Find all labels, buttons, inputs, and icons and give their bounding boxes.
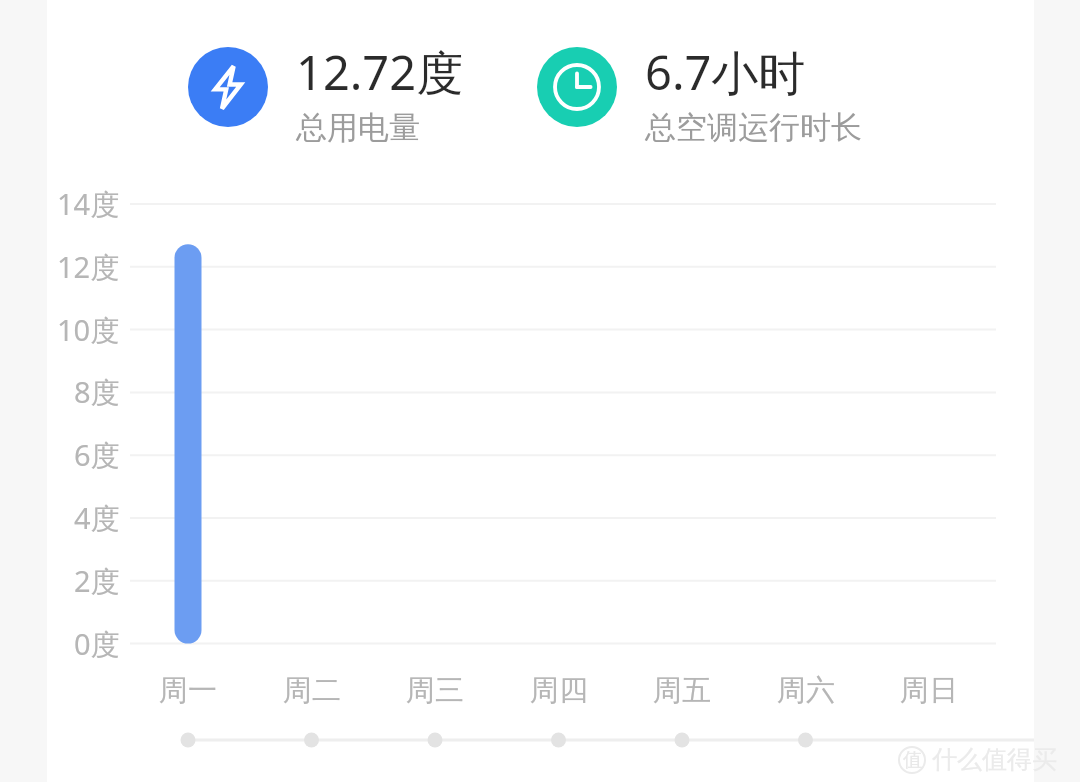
staticText: 周二 xyxy=(283,672,341,709)
other: 总空调运行时长 xyxy=(537,47,617,127)
staticText: 总用电量 xyxy=(296,108,420,147)
staticText: 总空调运行时长 xyxy=(645,108,862,147)
button[interactable]: 周三 xyxy=(385,670,485,710)
button[interactable]: 总空调运行时长 xyxy=(537,40,834,143)
button[interactable]: 周日 xyxy=(879,670,979,710)
staticText: 10度 xyxy=(57,310,120,350)
button[interactable]: 周六 xyxy=(756,670,856,710)
button[interactable]: 周二 xyxy=(262,670,362,710)
staticText: 4度 xyxy=(74,498,120,538)
button[interactable]: 周五 xyxy=(632,670,732,710)
staticText: 12.72度 xyxy=(296,40,464,104)
staticText: 0度 xyxy=(74,624,120,664)
button[interactable]: 周四 xyxy=(509,670,609,710)
other: 总用电量 xyxy=(188,47,268,127)
staticText: 8度 xyxy=(74,372,120,412)
button[interactable]: 周一 xyxy=(138,670,238,710)
staticText: 12度 xyxy=(57,247,120,287)
staticText: 周三 xyxy=(406,672,464,709)
staticText: 周日 xyxy=(900,672,958,709)
staticText: 6度 xyxy=(74,435,120,475)
staticText: 14度 xyxy=(57,184,120,224)
staticText: 什么值得买 xyxy=(932,744,1057,775)
staticText: 周六 xyxy=(777,672,835,709)
staticText: 6.7小时 xyxy=(645,40,806,104)
staticText: 2度 xyxy=(74,561,120,601)
staticText: 周四 xyxy=(530,672,588,709)
button[interactable]: 总用电量 xyxy=(188,40,436,143)
staticText: 周一 xyxy=(159,672,217,709)
staticText: 周五 xyxy=(653,672,711,709)
staticText: 值 xyxy=(903,748,922,772)
